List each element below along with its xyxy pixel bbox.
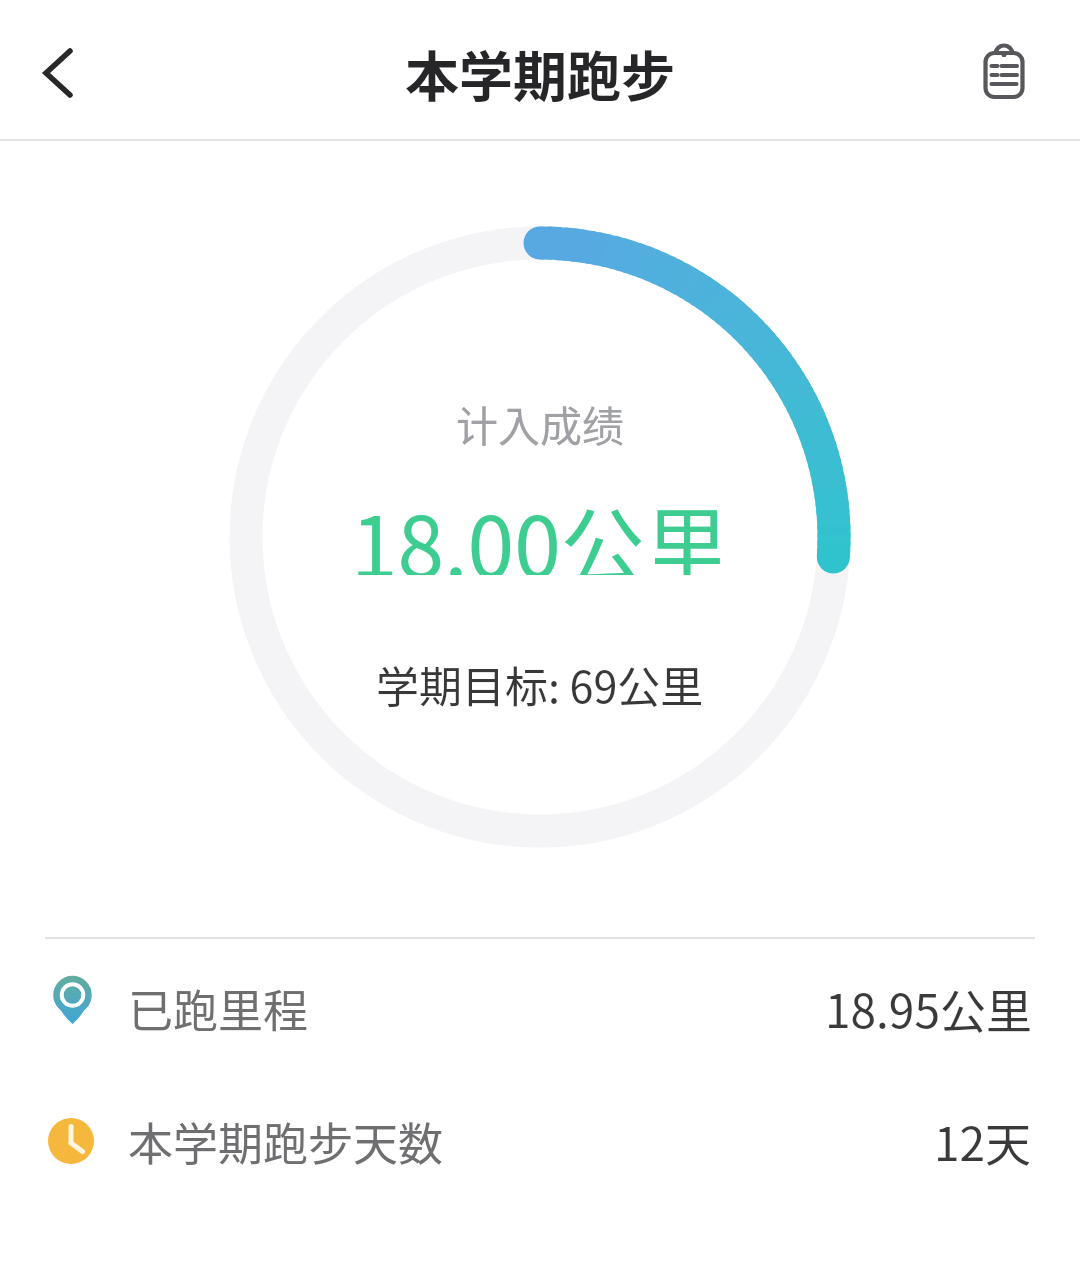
- staticText: 18.00公里: [351, 481, 729, 575]
- button[interactable]: 已跑里程: [0, 968, 1080, 1048]
- staticText: 已跑里程: [128, 976, 309, 1041]
- staticText: 计入成绩: [456, 393, 625, 453]
- button[interactable]: [20, 36, 96, 112]
- staticText: 学期目标: 69公里: [376, 653, 704, 713]
- button[interactable]: [966, 33, 1042, 109]
- staticText: 12天: [934, 1108, 1032, 1175]
- staticText: 本学期跑步: [405, 34, 675, 110]
- button[interactable]: 本学期跑步天数: [0, 1101, 1080, 1181]
- staticText: 18.95公里: [825, 975, 1032, 1042]
- staticText: 本学期跑步天数: [128, 1109, 444, 1174]
